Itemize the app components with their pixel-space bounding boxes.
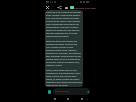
button[interactable]: Attach file: [48, 90, 51, 94]
button[interactable]: Navigation: [52, 96, 58, 102]
staticText: There are a lot of things to consider wh…: [46, 11, 82, 38]
staticText: Ask anything: [55, 90, 69, 93]
button[interactable]: Ask anything: [53, 88, 90, 95]
button[interactable]: Upgrade your plan: [74, 6, 97, 9]
button[interactable]: Model: [70, 6, 74, 9]
button[interactable]: Share: [57, 5, 62, 10]
staticText: Break the work into phases and estimate …: [46, 40, 82, 67]
button[interactable]: Navigation: [79, 96, 85, 102]
button[interactable]: Navigation: [65, 96, 71, 102]
button[interactable]: More options: [64, 5, 69, 10]
button[interactable]: Close: [45, 5, 50, 10]
staticText: Finally, leave some room in the schedule…: [46, 69, 82, 86]
